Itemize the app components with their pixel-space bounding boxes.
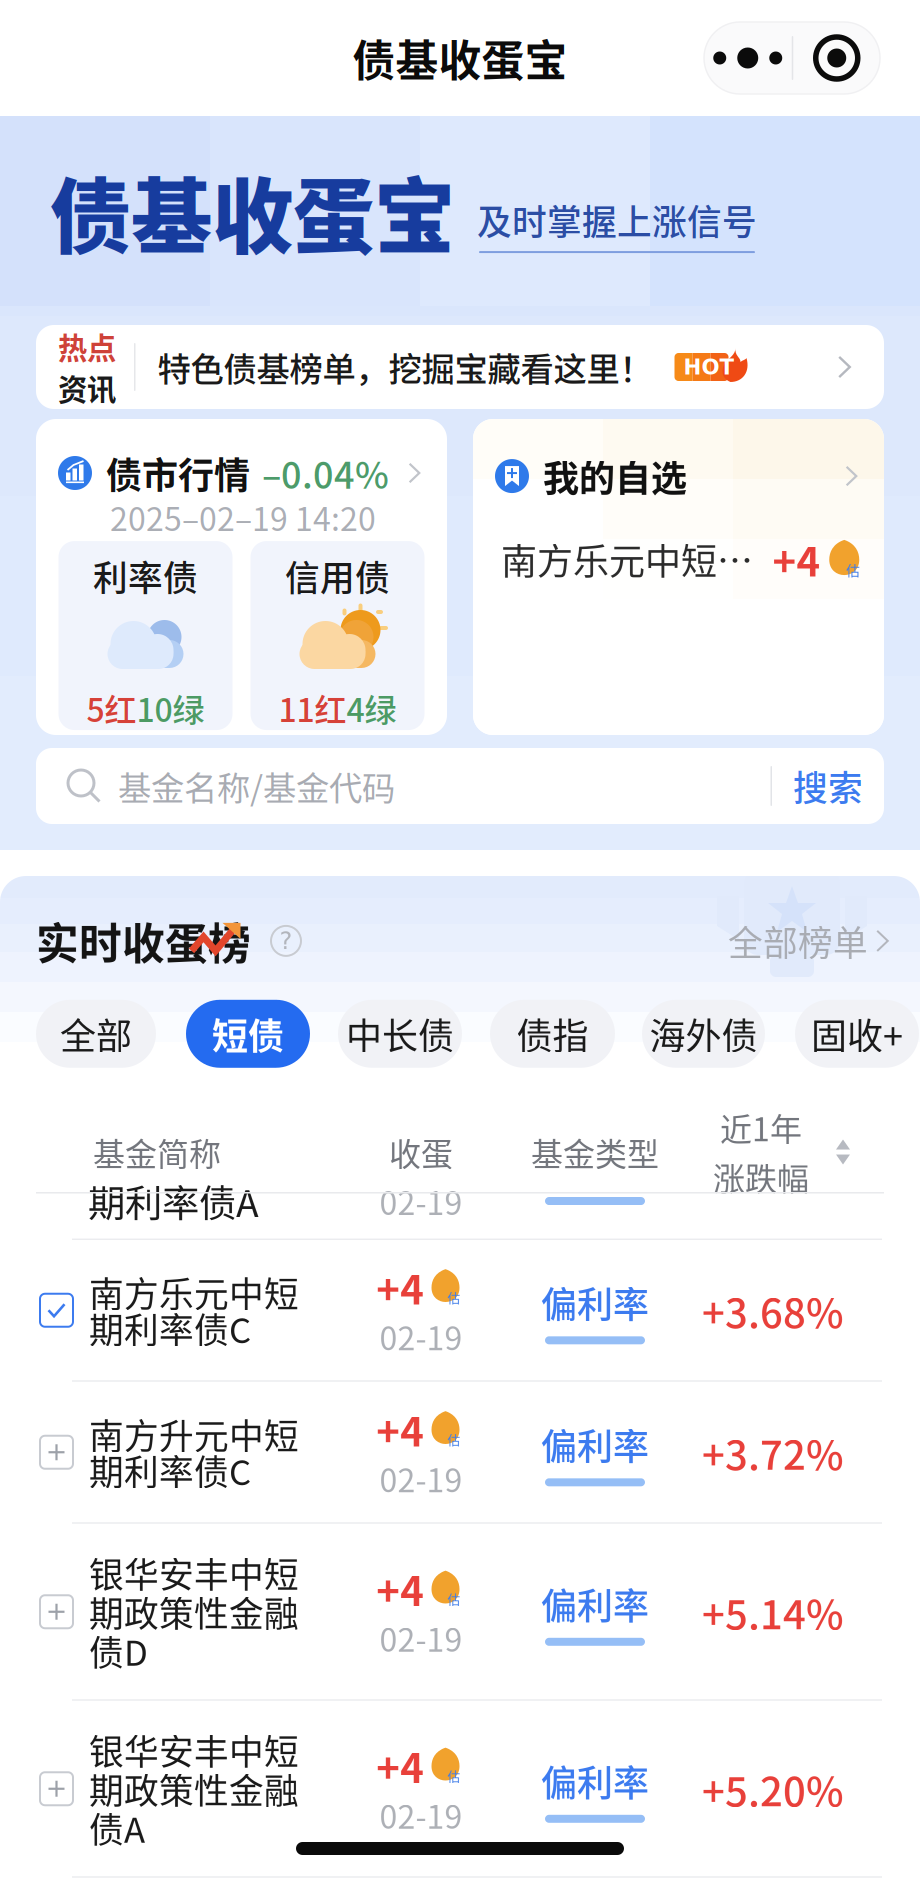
staticText: 02-19: [379, 1455, 462, 1501]
staticText: 02-19: [379, 1178, 462, 1224]
button[interactable]: 南方升元中短: [0, 1382, 920, 1524]
staticText: 我的自选: [543, 450, 687, 502]
staticText: 利率债: [93, 551, 198, 601]
staticText: 海外债: [649, 1008, 757, 1060]
staticText: 南方升元中短: [89, 1409, 299, 1459]
staticText: +4: [376, 1400, 424, 1458]
staticText: 资讯: [58, 366, 116, 409]
staticText: 估: [447, 1589, 460, 1608]
staticText: 债市行情: [106, 447, 250, 499]
button[interactable]: 全部榜单: [728, 916, 894, 966]
staticText: +4: [376, 1560, 424, 1617]
staticText: 偏利率: [541, 1755, 649, 1807]
staticText: 中长债: [346, 1008, 454, 1060]
staticText: 02-19: [379, 1313, 462, 1359]
button[interactable]: 债指: [490, 1000, 615, 1068]
staticText: 偏利率: [541, 1578, 649, 1630]
staticText: 债A: [89, 1803, 145, 1853]
staticText: 偏利率: [541, 1418, 649, 1470]
staticText: 债基收蛋宝: [352, 27, 567, 89]
staticText: 估: [447, 1288, 460, 1306]
staticText: +4: [376, 1737, 424, 1794]
staticText: +3.68%: [702, 1281, 844, 1339]
staticText: 信用债: [285, 551, 390, 601]
staticText: 固收+: [811, 1008, 903, 1060]
button[interactable]: 中长债: [338, 1000, 462, 1068]
staticText: 热点: [58, 325, 116, 367]
staticText: 2025–02–19 14:20: [110, 494, 376, 540]
button[interactable]: 南方乐元中短: [0, 1240, 920, 1382]
staticText: 债指: [516, 1008, 588, 1060]
staticText: 偏利率: [541, 1276, 649, 1328]
staticText: 估: [447, 1430, 460, 1448]
staticText: +5.14%: [702, 1583, 844, 1641]
staticText: 及时掌握上涨信号: [477, 195, 757, 245]
staticText: 02-19: [379, 1791, 462, 1838]
button[interactable]: 热点: [36, 325, 884, 409]
button[interactable]: 搜索: [772, 747, 884, 825]
staticText: +5.20%: [702, 1760, 844, 1818]
staticText: 全部榜单: [728, 916, 868, 966]
staticText: 基金名称/基金代码: [118, 762, 395, 810]
staticText: 期政策性金融: [89, 1764, 299, 1814]
staticText: 债D: [89, 1626, 148, 1676]
staticText: 期利率债C: [89, 1445, 251, 1495]
button[interactable]: 短债: [186, 1000, 310, 1068]
staticText: 期政策性金融: [89, 1587, 299, 1637]
staticText: 搜索: [793, 761, 863, 811]
staticText: –0.04%: [262, 447, 389, 499]
staticText: 银华安丰中短: [89, 1725, 299, 1775]
button[interactable]: More options: [704, 22, 880, 94]
button[interactable]: 我的自选: [473, 419, 884, 735]
staticText: 全部: [60, 1008, 132, 1060]
staticText: ?: [279, 927, 292, 955]
staticText: 11红: [278, 685, 346, 731]
staticText: 收蛋: [389, 1129, 453, 1175]
staticText: 债基收蛋宝: [50, 152, 455, 270]
staticText: 5红: [86, 685, 136, 731]
button[interactable]: 债市行情: [36, 419, 447, 735]
staticText: 4绿: [346, 685, 396, 731]
button[interactable]: 海外债: [642, 1000, 765, 1068]
staticText: 基金类型: [531, 1129, 659, 1175]
staticText: 期利率债C: [89, 1303, 251, 1353]
staticText: +3.72%: [702, 1423, 844, 1481]
staticText: 估: [846, 560, 860, 580]
button[interactable]: 全部: [36, 1000, 156, 1068]
staticText: 估: [447, 1766, 460, 1785]
staticText: 南方乐元中短…: [501, 533, 753, 585]
staticText: 10绿: [136, 685, 204, 731]
button[interactable]: 银华安丰中短: [0, 1701, 920, 1878]
staticText: 特色债基榜单，挖掘宝藏看这里！: [157, 343, 652, 391]
staticText: 近1年: [720, 1104, 802, 1150]
staticText: 实时收蛋榜: [36, 910, 251, 972]
staticText: 涨跌幅: [713, 1153, 809, 1200]
staticText: 02-19: [379, 1614, 462, 1661]
staticText: 银华安丰中短: [89, 1548, 299, 1598]
staticText: +4: [772, 530, 820, 588]
staticText: +4: [376, 1258, 424, 1316]
staticText: HOT: [683, 355, 734, 379]
button[interactable]: 固收+: [795, 1000, 919, 1068]
staticText: 基金简称: [93, 1129, 221, 1175]
staticText: 期利率债A: [88, 1174, 259, 1228]
button[interactable]: 银华安丰中短: [0, 1524, 920, 1701]
staticText: 南方乐元中短: [89, 1267, 299, 1317]
staticText: 短债: [212, 1008, 284, 1060]
